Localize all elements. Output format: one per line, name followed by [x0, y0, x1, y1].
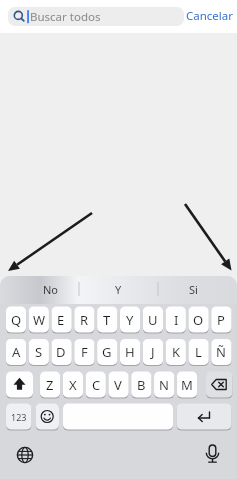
- button[interactable]: Ñ: [211, 339, 231, 365]
- staticText: U: [148, 311, 158, 329]
- staticText: Y: [115, 282, 122, 297]
- staticText: J: [151, 343, 155, 361]
- button[interactable]: [206, 372, 233, 398]
- button[interactable]: No: [11, 277, 90, 302]
- button[interactable]: V: [108, 372, 128, 398]
- staticText: X: [69, 376, 77, 394]
- staticText: Q: [11, 311, 22, 329]
- staticText: R: [80, 311, 89, 329]
- button[interactable]: D: [51, 339, 71, 365]
- button[interactable]: [10, 440, 40, 470]
- button[interactable]: T: [97, 307, 117, 333]
- button[interactable]: H: [120, 339, 140, 365]
- staticText: Z: [46, 376, 54, 394]
- button[interactable]: W: [29, 307, 49, 333]
- button[interactable]: [177, 404, 232, 430]
- staticText: N: [159, 376, 169, 394]
- button[interactable]: Y: [79, 277, 158, 302]
- staticText: C: [92, 376, 101, 394]
- button[interactable]: I: [166, 307, 186, 333]
- button[interactable]: [6, 372, 33, 398]
- button[interactable]: Si: [154, 277, 233, 302]
- button[interactable]: [63, 404, 173, 430]
- staticText: I: [174, 311, 179, 329]
- staticText: B: [137, 376, 146, 394]
- staticText: D: [56, 343, 66, 361]
- staticText: G: [102, 343, 112, 361]
- staticText: H: [125, 343, 135, 361]
- button[interactable]: L: [188, 339, 208, 365]
- button[interactable]: P: [211, 307, 231, 333]
- staticText: S: [35, 343, 43, 361]
- button[interactable]: B: [131, 372, 151, 398]
- button[interactable]: [36, 404, 60, 430]
- staticText: E: [57, 311, 65, 329]
- button[interactable]: M: [177, 372, 197, 398]
- button[interactable]: R: [74, 307, 94, 333]
- staticText: M: [181, 376, 193, 394]
- staticText: W: [33, 311, 46, 329]
- button[interactable]: 123: [6, 404, 32, 430]
- button[interactable]: K: [166, 339, 186, 365]
- button[interactable]: S: [29, 339, 49, 365]
- button[interactable]: N: [154, 372, 174, 398]
- button[interactable]: F: [74, 339, 94, 365]
- button[interactable]: E: [51, 307, 71, 333]
- button[interactable]: Cancelar: [183, 6, 237, 26]
- staticText: L: [195, 343, 202, 361]
- staticText: No: [43, 282, 59, 297]
- staticText: Y: [126, 311, 134, 329]
- button[interactable]: C: [86, 372, 106, 398]
- button[interactable]: G: [97, 339, 117, 365]
- button[interactable]: [197, 440, 227, 470]
- staticText: K: [172, 343, 181, 361]
- button[interactable]: Z: [40, 372, 60, 398]
- button[interactable]: J: [143, 339, 163, 365]
- staticText: Ñ: [216, 343, 226, 361]
- button[interactable]: O: [188, 307, 208, 333]
- staticText: 123: [11, 411, 27, 423]
- staticText: P: [217, 311, 225, 329]
- staticText: A: [12, 343, 21, 361]
- staticText: Cancelar: [186, 8, 234, 24]
- button[interactable]: X: [63, 372, 83, 398]
- staticText: Buscar todos: [30, 9, 101, 25]
- button[interactable]: U: [143, 307, 163, 333]
- button[interactable]: Q: [6, 307, 26, 333]
- staticText: F: [81, 343, 88, 361]
- button[interactable]: Buscar todos: [8, 7, 184, 26]
- staticText: T: [103, 311, 111, 329]
- button[interactable]: Y: [120, 307, 140, 333]
- staticText: V: [114, 376, 122, 394]
- staticText: O: [193, 311, 204, 329]
- button[interactable]: A: [6, 339, 26, 365]
- staticText: Si: [189, 282, 198, 297]
